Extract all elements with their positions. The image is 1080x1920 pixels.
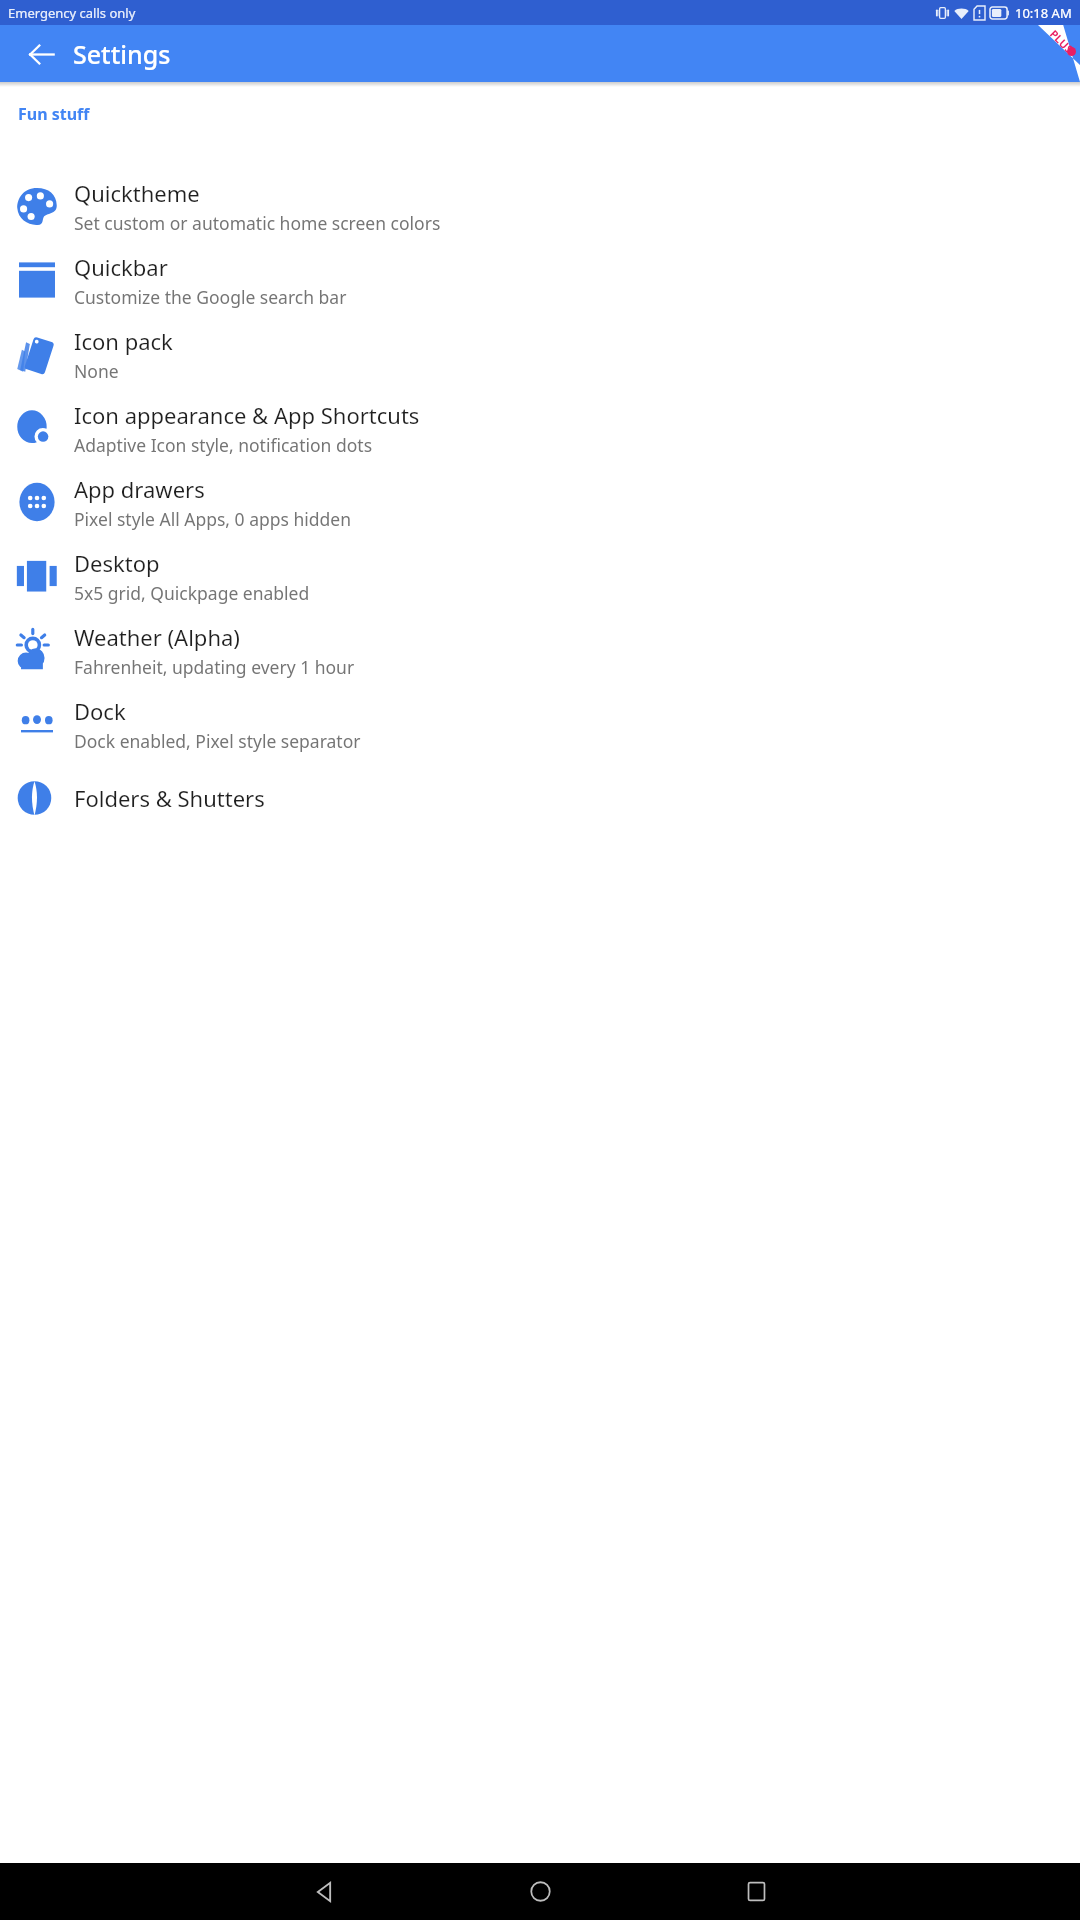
staticText: App drawers <box>74 474 205 504</box>
staticText: Settings <box>73 37 171 71</box>
staticText: Emergency calls only <box>8 4 136 22</box>
staticText: Icon pack <box>74 326 173 356</box>
staticText: Fahrenheit, updating every 1 hour <box>74 655 355 679</box>
button[interactable]: Back <box>216 1863 432 1920</box>
button[interactable]: App drawers <box>0 465 1080 539</box>
button[interactable]: Quickbar <box>0 243 1080 317</box>
staticText: Weather (Alpha) <box>74 622 240 652</box>
staticText: Dock <box>74 696 126 726</box>
staticText: Icon appearance & App Shortcuts <box>74 400 420 430</box>
button[interactable]: Dock <box>0 687 1080 761</box>
button[interactable]: Icon pack <box>0 317 1080 391</box>
staticText: Adaptive Icon style, notification dots <box>74 433 373 457</box>
staticText: Dock enabled, Pixel style separator <box>74 729 361 753</box>
button[interactable]: Recents <box>648 1863 864 1920</box>
staticText: Folders & Shutters <box>74 783 265 813</box>
staticText: Desktop <box>74 548 160 578</box>
button[interactable]: Plus <box>1020 25 1080 82</box>
staticText: PLUS <box>1047 26 1077 57</box>
staticText: Quickbar <box>74 252 168 282</box>
button[interactable]: Icon appearance & App Shortcuts <box>0 391 1080 465</box>
button[interactable]: Folders & Shutters <box>0 761 1080 835</box>
button[interactable]: Back <box>14 27 68 81</box>
staticText: Customize the Google search bar <box>74 285 347 309</box>
staticText: None <box>74 359 119 383</box>
staticText: Fun stuff <box>18 103 90 125</box>
staticText: Pixel style All Apps, 0 apps hidden <box>74 507 351 531</box>
button[interactable]: Quicktheme <box>0 169 1080 243</box>
button[interactable]: Home <box>432 1863 648 1920</box>
staticText: Quicktheme <box>74 178 200 208</box>
button[interactable]: Weather (Alpha) <box>0 613 1080 687</box>
button[interactable]: Desktop <box>0 539 1080 613</box>
staticText: Set custom or automatic home screen colo… <box>74 211 441 235</box>
staticText: 5x5 grid, Quickpage enabled <box>74 581 310 605</box>
staticText: 10:18 AM <box>1015 4 1072 22</box>
